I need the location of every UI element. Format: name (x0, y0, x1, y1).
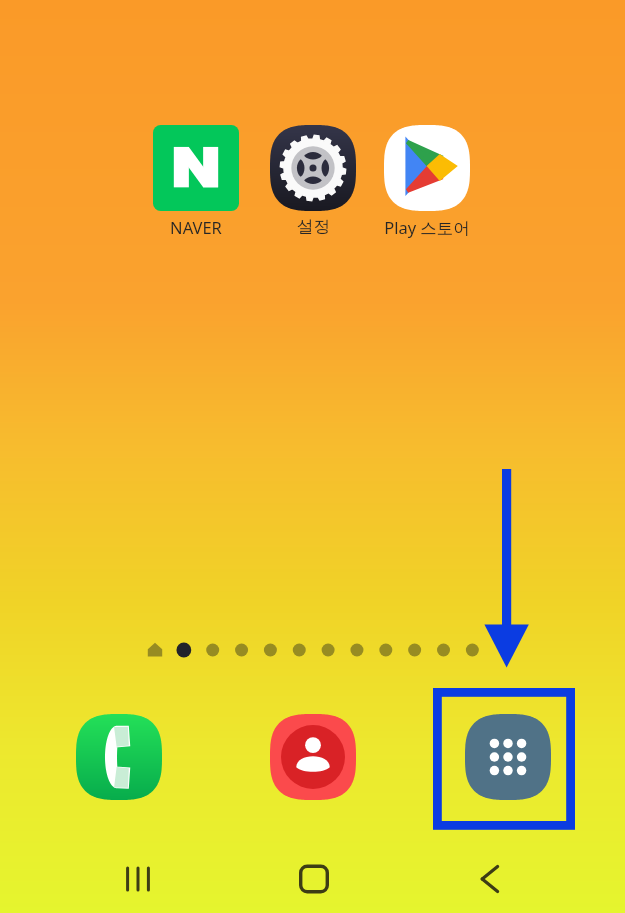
button[interactable]: Recent apps (96, 846, 180, 912)
button[interactable]: Home (272, 846, 356, 912)
button[interactable]: Phone (76, 714, 162, 800)
button[interactable]: Contacts (270, 714, 356, 800)
button[interactable]: Play 스토어 (360, 117, 494, 235)
button[interactable]: Apps (465, 714, 551, 800)
button[interactable]: 설정 (246, 117, 380, 235)
staticText: Play 스토어 (384, 216, 470, 239)
button[interactable]: Back (448, 846, 532, 912)
staticText: NAVER (170, 216, 222, 238)
button[interactable]: NAVER (129, 117, 263, 235)
staticText: 설정 (297, 216, 330, 237)
